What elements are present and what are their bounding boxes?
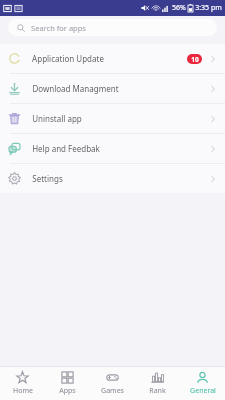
- button[interactable]: Uninstall app: [0, 104, 225, 133]
- button[interactable]: Help and Feedbak: [0, 134, 225, 163]
- button[interactable]: Games: [90, 368, 135, 399]
- button[interactable]: General: [180, 368, 225, 399]
- staticText: Download Managment: [32, 83, 119, 94]
- button[interactable]: Apps: [45, 368, 90, 399]
- button[interactable]: Application Update: [0, 44, 225, 73]
- staticText: Games: [101, 386, 124, 396]
- staticText: Search for apps: [31, 23, 86, 33]
- staticText: 10: [191, 55, 199, 64]
- staticText: 3:35 pm: [195, 3, 222, 13]
- staticText: General: [190, 386, 216, 396]
- staticText: Help and Feedbak: [32, 143, 100, 154]
- staticText: Rank: [149, 386, 166, 396]
- staticText: Apps: [59, 386, 76, 396]
- button[interactable]: Settings: [0, 164, 225, 193]
- button[interactable]: Download Managment: [0, 74, 225, 103]
- staticText: 56%: [172, 3, 186, 13]
- button[interactable]: Home: [0, 368, 45, 399]
- staticText: Home: [13, 386, 33, 396]
- button[interactable]: Rank: [135, 368, 180, 399]
- staticText: Uninstall app: [32, 113, 82, 124]
- button[interactable]: Search for apps: [8, 19, 217, 36]
- staticText: Application Update: [32, 53, 104, 64]
- staticText: Settings: [32, 173, 63, 184]
